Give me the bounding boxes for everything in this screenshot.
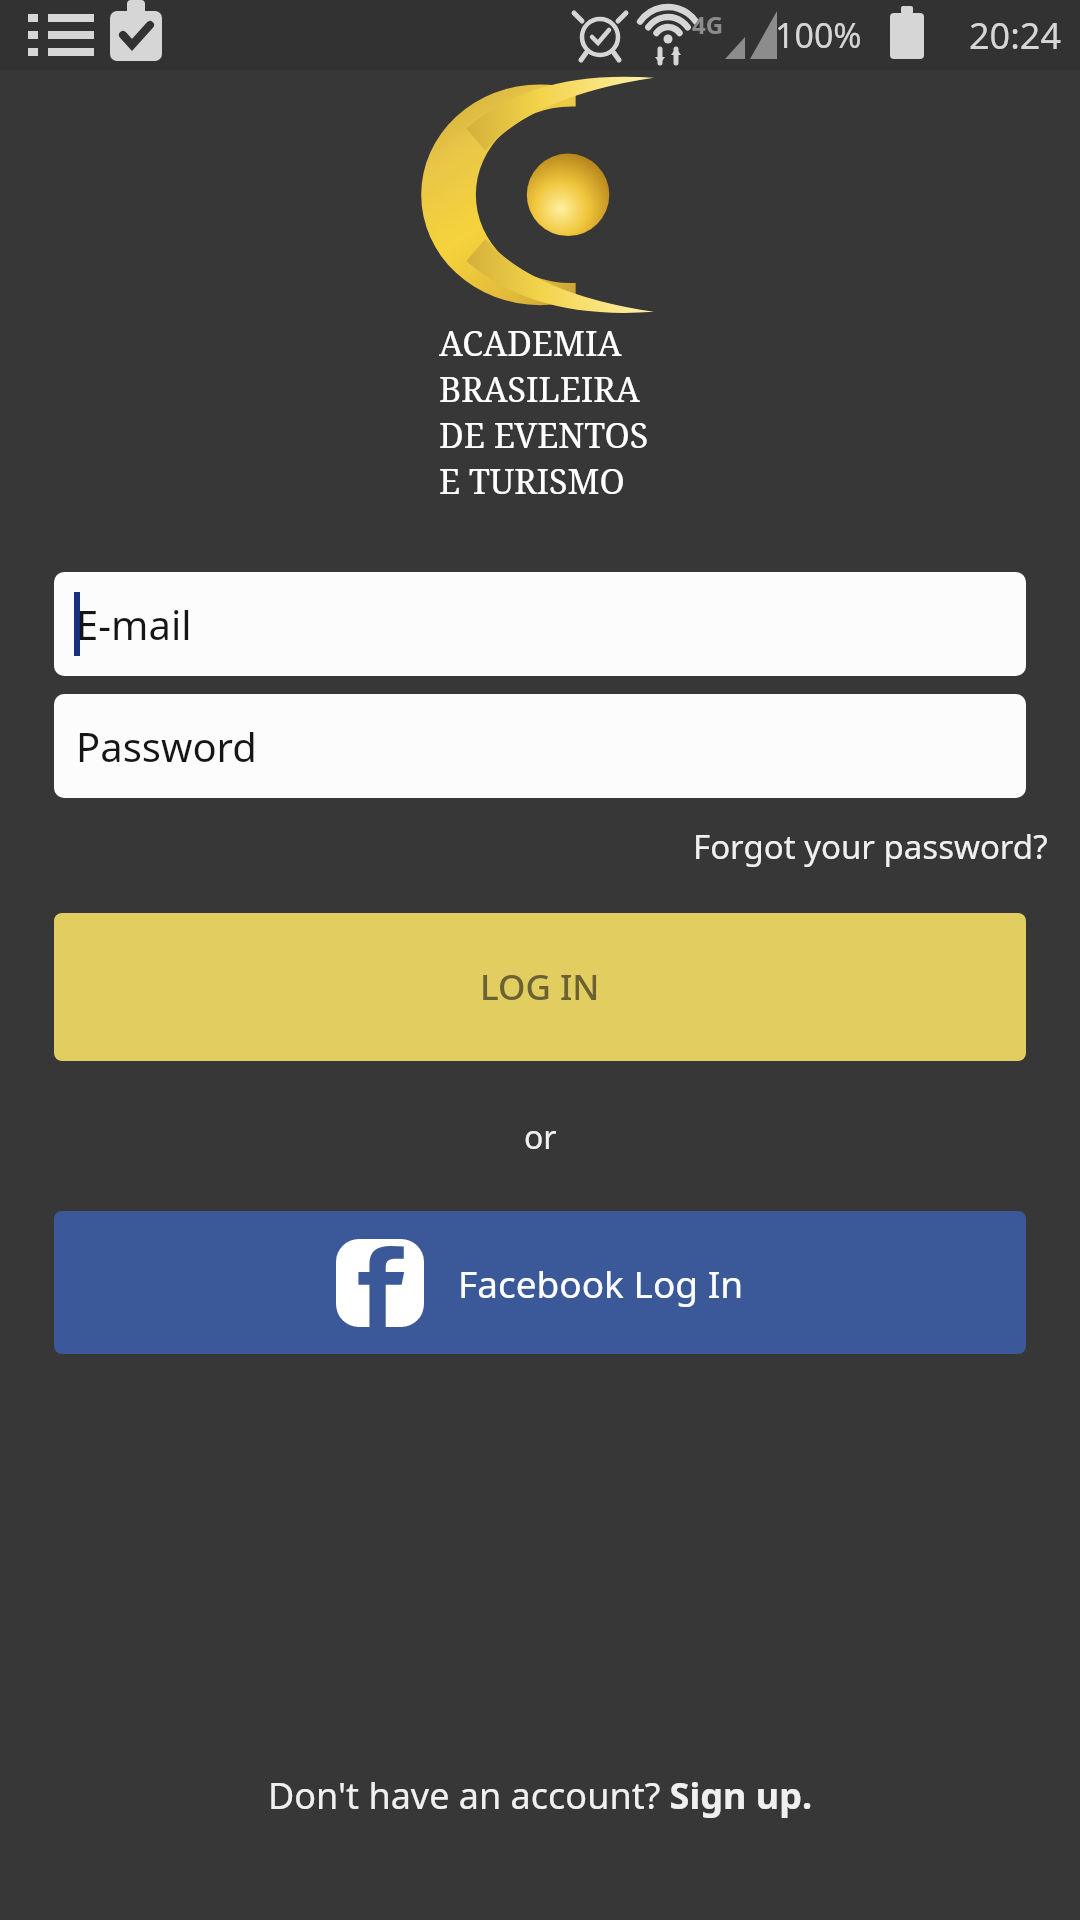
button[interactable]: Password [54, 694, 1026, 798]
staticText: E TURISMO [439, 458, 625, 504]
button[interactable]: Don't have an account? Sign up. [262, 1767, 818, 1824]
staticText: Forgot your password? [693, 824, 1048, 869]
button[interactable]: Facebook [54, 1211, 1026, 1354]
staticText: 100% [775, 12, 862, 58]
staticText: Facebook Log In [458, 1258, 744, 1308]
staticText: or [524, 1115, 557, 1159]
staticText: 4G [692, 8, 724, 41]
other: Facebook [336, 1239, 424, 1327]
button[interactable]: LOG IN [54, 913, 1026, 1061]
staticText: ACADEMIA [439, 320, 622, 366]
staticText: DE EVENTOS [439, 412, 649, 458]
button[interactable]: E-mail [54, 572, 1026, 676]
staticText: LOG IN [480, 963, 600, 1011]
staticText: Password [76, 719, 257, 773]
staticText: Don't have an account? Sign up. [268, 1771, 812, 1820]
staticText: 20:24 [969, 11, 1062, 60]
staticText: E-mail [76, 597, 192, 651]
button[interactable]: Forgot your password? [687, 820, 1054, 873]
staticText: BRASILEIRA [439, 366, 640, 412]
